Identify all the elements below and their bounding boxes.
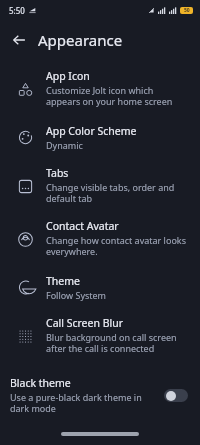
staticText: Follow System [46,289,107,301]
staticText: Blur background on call screen after the… [46,331,186,355]
button[interactable]: Tabs [0,159,200,212]
staticText: Use a pure-black dark theme in dark mode [10,391,156,415]
staticText: Appearance [38,30,123,50]
staticText: App Color Scheme [46,124,137,138]
staticText: 50 [184,7,190,14]
staticText: 5:50 [9,5,25,16]
button[interactable]: Black theme [0,368,200,423]
button[interactable]: Call Screen Blur [0,309,200,362]
staticText: Customize Jolt icon which appears on you… [46,84,186,108]
staticText: Tabs [46,166,69,180]
button[interactable]: Back [6,27,32,53]
staticText: App Icon [46,69,90,83]
button[interactable]: Theme [0,265,200,309]
button[interactable]: App Icon [0,62,200,115]
staticText: Change visible tabs, order and default t… [46,181,186,205]
staticText: Call Screen Blur [46,316,124,330]
button[interactable]: App Color Scheme [0,115,200,159]
staticText: Contact Avatar [46,219,119,233]
staticText: Dynamic [46,139,83,151]
staticText: Black theme [10,376,71,390]
staticText: Theme [46,274,80,288]
button[interactable]: Contact Avatar [0,212,200,265]
staticText: Change how contact avatar looks everywhe… [46,234,186,258]
